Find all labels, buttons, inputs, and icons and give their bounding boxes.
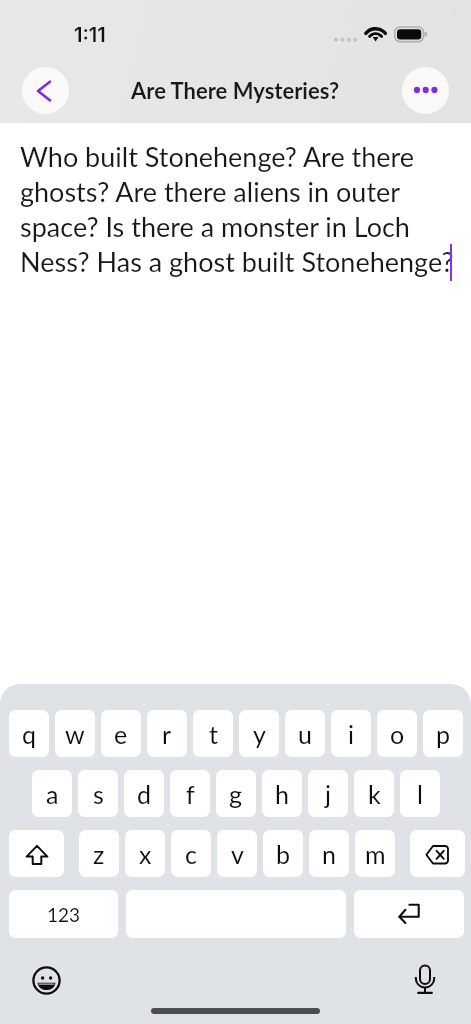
staticText: o: [390, 719, 405, 749]
staticText: n: [322, 839, 336, 869]
button[interactable]: v: [217, 830, 257, 877]
button[interactable]: p: [423, 710, 463, 757]
button[interactable]: q: [9, 710, 49, 757]
staticText: 1:11: [74, 23, 106, 47]
staticText: w: [65, 719, 85, 749]
button[interactable]: Backspace: [410, 830, 465, 877]
button[interactable]: d: [124, 770, 164, 817]
button[interactable]: n: [309, 830, 349, 877]
button[interactable]: h: [262, 770, 302, 817]
staticText: k: [368, 779, 381, 809]
button[interactable]: s: [78, 770, 118, 817]
button[interactable]: a: [32, 770, 72, 817]
button[interactable]: Voice input: [405, 960, 445, 1000]
staticText: l: [417, 779, 423, 809]
button[interactable]: y: [239, 710, 279, 757]
staticText: r: [162, 719, 172, 749]
button[interactable]: Back: [22, 67, 69, 114]
staticText: y: [253, 719, 266, 749]
staticText: v: [231, 839, 244, 869]
staticText: u: [298, 719, 312, 749]
staticText: 123: [47, 903, 81, 926]
staticText: c: [185, 839, 197, 869]
staticText: j: [325, 779, 332, 809]
button[interactable]: u: [285, 710, 325, 757]
staticText: s: [93, 779, 104, 809]
staticText: b: [276, 839, 291, 869]
staticText: i: [348, 719, 355, 749]
button[interactable]: t: [193, 710, 233, 757]
staticText: m: [365, 839, 386, 869]
staticText: d: [137, 779, 152, 809]
staticText: q: [22, 719, 37, 749]
staticText: f: [186, 779, 195, 809]
staticText: e: [114, 719, 128, 749]
staticText: a: [46, 779, 59, 809]
button[interactable]: Emoji: [26, 960, 66, 1000]
button[interactable]: w: [55, 710, 95, 757]
button[interactable]: f: [170, 770, 210, 817]
button[interactable]: g: [216, 770, 256, 817]
button[interactable]: k: [354, 770, 394, 817]
button[interactable]: r: [147, 710, 187, 757]
button[interactable]: j: [308, 770, 348, 817]
staticText: p: [436, 719, 451, 749]
button[interactable]: m: [355, 830, 395, 877]
button[interactable]: Shift: [9, 830, 64, 877]
staticText: h: [275, 779, 289, 809]
button[interactable]: z: [79, 830, 119, 877]
button[interactable]: x: [125, 830, 165, 877]
button[interactable]: c: [171, 830, 211, 877]
staticText: t: [209, 719, 218, 749]
staticText: Who built Stonehenge? Are there ghosts? …: [20, 140, 461, 277]
button[interactable]: l: [400, 770, 440, 817]
button[interactable]: 123: [9, 890, 118, 938]
button[interactable]: i: [331, 710, 371, 757]
button[interactable]: e: [101, 710, 141, 757]
staticText: Are There Mysteries?: [131, 77, 340, 103]
button[interactable]: b: [263, 830, 303, 877]
button[interactable]: o: [377, 710, 417, 757]
staticText: x: [139, 839, 152, 869]
button[interactable]: More options: [402, 67, 449, 114]
button[interactable]: Enter: [354, 890, 464, 938]
staticText: z: [93, 839, 105, 869]
staticText: g: [229, 779, 243, 809]
